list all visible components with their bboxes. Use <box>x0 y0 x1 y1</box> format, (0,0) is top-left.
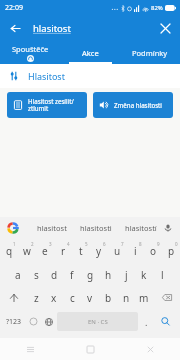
staticText: 2 <box>31 241 34 247</box>
button[interactable]: Podmínky <box>120 41 180 64</box>
staticText: hlasitostí <box>125 223 157 233</box>
staticText: 6 <box>103 241 106 247</box>
staticText: Spouštěče <box>12 44 49 54</box>
staticText: 7 <box>121 241 124 247</box>
button[interactable]: x <box>45 286 63 309</box>
staticText: . <box>145 316 148 328</box>
staticText: 8 <box>139 241 142 247</box>
staticText: k <box>141 268 147 282</box>
staticText: w <box>23 244 31 258</box>
staticText: Hlasitost zesílit/ ztlumit <box>28 97 74 113</box>
button[interactable]: u <box>108 239 126 263</box>
button[interactable]: Hlasitost zesílit/ ztlumit <box>7 92 87 118</box>
button[interactable]: d <box>45 263 63 286</box>
button[interactable]: . <box>138 312 154 331</box>
staticText: v <box>87 291 93 305</box>
button[interactable]: s <box>27 263 45 286</box>
button[interactable]: z <box>27 286 45 309</box>
button[interactable]: e <box>36 239 54 263</box>
button[interactable]: w <box>18 239 36 263</box>
staticText: 5 <box>85 241 88 247</box>
button[interactable]: o <box>144 239 162 263</box>
staticText: a <box>15 268 21 282</box>
button[interactable]: g <box>81 263 99 286</box>
button[interactable]: q <box>0 239 18 263</box>
staticText: EN · CS <box>88 318 108 326</box>
button[interactable]: ?123 <box>3 312 25 331</box>
button[interactable]: l <box>153 263 171 286</box>
button[interactable]: Voice input <box>161 221 175 235</box>
staticText: 3 <box>49 241 52 247</box>
button[interactable]: hlasitost <box>37 223 67 233</box>
button[interactable]: t <box>72 239 90 263</box>
button[interactable]: p <box>162 239 180 263</box>
staticText: 0 <box>175 241 178 247</box>
staticText: y <box>96 244 102 258</box>
staticText: e <box>42 244 48 258</box>
button[interactable]: Change language <box>41 312 57 331</box>
staticText: g <box>87 268 94 282</box>
staticText: f <box>70 268 74 282</box>
staticText: hlasitosti <box>80 223 112 233</box>
button[interactable]: v <box>81 286 99 309</box>
staticText: o <box>150 244 157 258</box>
staticText: r <box>61 244 66 258</box>
button[interactable]: Shift <box>0 286 27 309</box>
button[interactable]: j <box>117 263 135 286</box>
button[interactable]: h <box>99 263 117 286</box>
button[interactable]: Back <box>120 338 180 360</box>
button[interactable]: i <box>126 239 144 263</box>
button[interactable]: hlasitost <box>33 22 71 35</box>
button[interactable]: Back <box>4 17 26 39</box>
button[interactable]: Home <box>60 338 120 360</box>
button[interactable]: Search <box>154 312 177 331</box>
button[interactable]: Emoji <box>25 312 41 331</box>
button[interactable]: Clear <box>154 17 176 39</box>
staticText: m <box>139 291 149 305</box>
button[interactable]: f <box>63 263 81 286</box>
staticText: q <box>6 244 13 258</box>
button[interactable]: Recents <box>0 338 60 360</box>
staticText: n <box>123 291 130 305</box>
button[interactable]: k <box>135 263 153 286</box>
staticText: 4 <box>67 241 70 247</box>
button[interactable]: a <box>9 263 27 286</box>
staticText: x <box>51 291 57 305</box>
staticText: b <box>105 291 112 305</box>
staticText: 1 <box>13 241 16 247</box>
staticText: Podmínky <box>132 48 168 58</box>
staticText: i <box>134 244 137 258</box>
staticText: l <box>161 268 164 282</box>
button[interactable]: n <box>117 286 135 309</box>
staticText: d <box>51 268 58 282</box>
staticText: t <box>79 244 83 258</box>
button[interactable]: Změna hlasitosti <box>93 92 173 118</box>
staticText: j <box>125 268 128 282</box>
button[interactable]: b <box>99 286 117 309</box>
staticText: hlasitost <box>37 223 67 233</box>
staticText: Hlasitost <box>28 70 65 82</box>
button[interactable]: Akce <box>60 41 120 64</box>
staticText: Akce <box>82 48 99 58</box>
button[interactable]: Backspace <box>153 286 180 309</box>
staticText: 9 <box>157 241 160 247</box>
staticText: hlasitost <box>33 22 71 35</box>
button[interactable]: hlasitostí <box>125 223 157 233</box>
button[interactable]: EN · CS <box>57 312 138 331</box>
staticText: p <box>168 244 175 258</box>
staticText: h <box>105 268 112 282</box>
staticText: s <box>34 268 39 282</box>
staticText: c <box>70 291 75 305</box>
button[interactable]: hlasitosti <box>80 223 112 233</box>
button[interactable]: r <box>54 239 72 263</box>
button[interactable]: c <box>63 286 81 309</box>
button[interactable]: y <box>90 239 108 263</box>
staticText: ?123 <box>6 317 22 327</box>
button[interactable]: m <box>135 286 153 309</box>
staticText: 82% <box>151 4 163 12</box>
button[interactable]: Spouštěče <box>0 41 60 64</box>
button[interactable]: Google <box>6 221 20 235</box>
staticText: z <box>34 291 39 305</box>
staticText: Změna hlasitosti <box>114 101 162 109</box>
staticText: u <box>114 244 121 258</box>
